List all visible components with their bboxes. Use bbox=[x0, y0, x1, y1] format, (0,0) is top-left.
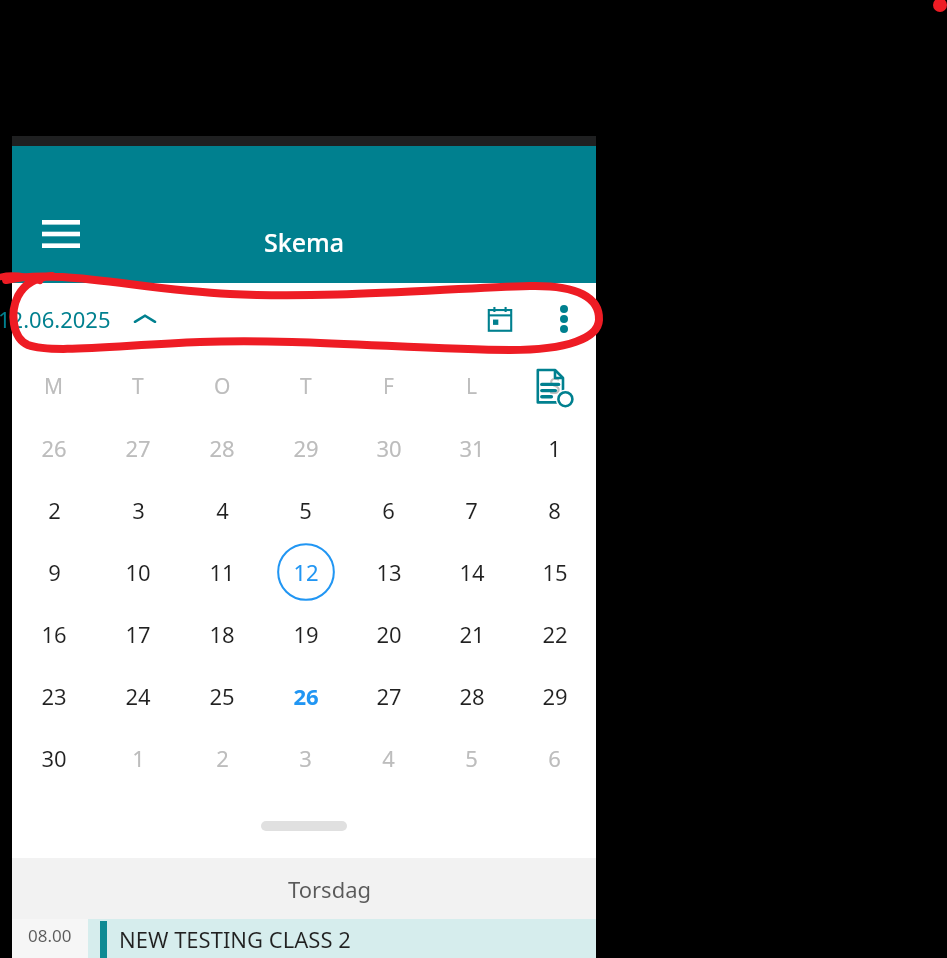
staticText: S bbox=[549, 372, 561, 401]
staticText: 21 bbox=[459, 619, 485, 649]
staticText: 4 bbox=[216, 495, 229, 525]
staticText: 31 bbox=[459, 433, 485, 463]
button[interactable]: 11 bbox=[180, 541, 264, 603]
button[interactable]: 26 bbox=[12, 417, 96, 479]
staticText: 23 bbox=[41, 681, 67, 711]
button[interactable]: 22 bbox=[513, 603, 596, 665]
staticText: 6 bbox=[548, 743, 561, 773]
staticText: 19 bbox=[293, 619, 319, 649]
button[interactable]: 10 bbox=[96, 541, 180, 603]
button[interactable]: 13 bbox=[347, 541, 430, 603]
staticText: 30 bbox=[376, 433, 402, 463]
staticText: 7 bbox=[465, 495, 478, 525]
staticText: 13 bbox=[376, 557, 402, 587]
button[interactable]: 14 bbox=[430, 541, 513, 603]
button[interactable]: 9 bbox=[12, 541, 96, 603]
staticText: 25 bbox=[209, 681, 235, 711]
button[interactable]: 15 bbox=[513, 541, 596, 603]
staticText: T bbox=[132, 372, 144, 401]
button[interactable]: 4 bbox=[180, 479, 264, 541]
staticText: T bbox=[300, 372, 312, 401]
button[interactable]: 26 bbox=[264, 665, 347, 727]
button[interactable]: 5 bbox=[430, 727, 513, 789]
staticText: 12 bbox=[293, 557, 319, 587]
staticText: 5 bbox=[299, 495, 312, 525]
staticText: 29 bbox=[293, 433, 319, 463]
button[interactable]: 18 bbox=[180, 603, 264, 665]
button[interactable]: 7 bbox=[430, 479, 513, 541]
button[interactable]: 4 bbox=[347, 727, 430, 789]
staticText: 5 bbox=[465, 743, 478, 773]
staticText: Skema bbox=[264, 225, 345, 259]
button[interactable]: 28 bbox=[430, 665, 513, 727]
staticText: 08.00 bbox=[28, 924, 72, 947]
staticText: 20 bbox=[376, 619, 402, 649]
button[interactable]: 21 bbox=[430, 603, 513, 665]
button[interactable]: 1 bbox=[513, 417, 596, 479]
button[interactable]: 30 bbox=[12, 727, 96, 789]
button[interactable]: 2 bbox=[12, 479, 96, 541]
button[interactable]: 16 bbox=[12, 603, 96, 665]
button[interactable]: 24 bbox=[96, 665, 180, 727]
staticText: NEW TESTING CLASS 2 bbox=[119, 924, 351, 954]
staticText: 26 bbox=[293, 681, 319, 711]
button[interactable]: 1 bbox=[96, 727, 180, 789]
staticText: Torsdag bbox=[288, 874, 372, 904]
staticText: 22 bbox=[542, 619, 568, 649]
button[interactable]: 23 bbox=[12, 665, 96, 727]
button[interactable]: Pick date bbox=[476, 295, 524, 343]
staticText: 24 bbox=[125, 681, 151, 711]
button[interactable]: 3 bbox=[264, 727, 347, 789]
staticText: 3 bbox=[299, 743, 312, 773]
button[interactable]: 8 bbox=[513, 479, 596, 541]
button[interactable]: Documents, 3 new bbox=[532, 365, 578, 411]
button[interactable]: 27 bbox=[347, 665, 430, 727]
button[interactable]: 27 bbox=[96, 417, 180, 479]
button[interactable]: 20 bbox=[347, 603, 430, 665]
staticText: 28 bbox=[209, 433, 235, 463]
staticText: 16 bbox=[41, 619, 67, 649]
staticText: 1 bbox=[132, 743, 145, 773]
staticText: 27 bbox=[125, 433, 151, 463]
button[interactable]: 12.06.2025 bbox=[0, 296, 159, 342]
button[interactable]: 6 bbox=[347, 479, 430, 541]
staticText: 28 bbox=[459, 681, 485, 711]
staticText: 2 bbox=[216, 743, 229, 773]
staticText: L bbox=[466, 372, 478, 401]
staticText: M bbox=[44, 372, 64, 401]
button[interactable]: 28 bbox=[180, 417, 264, 479]
staticText: 12.06.2025 bbox=[0, 304, 111, 334]
staticText: 17 bbox=[125, 619, 151, 649]
button[interactable]: 29 bbox=[264, 417, 347, 479]
button[interactable]: 31 bbox=[430, 417, 513, 479]
button[interactable]: 25 bbox=[180, 665, 264, 727]
staticText: 8 bbox=[548, 495, 561, 525]
staticText: 9 bbox=[48, 557, 61, 587]
staticText: 3 bbox=[132, 495, 145, 525]
button[interactable]: 2 bbox=[180, 727, 264, 789]
button[interactable]: 6 bbox=[513, 727, 596, 789]
button[interactable]: 3 bbox=[96, 479, 180, 541]
button[interactable]: 5 bbox=[264, 479, 347, 541]
button[interactable]: 30 bbox=[347, 417, 430, 479]
button[interactable]: 29 bbox=[513, 665, 596, 727]
staticText: 4 bbox=[382, 743, 395, 773]
staticText: 6 bbox=[382, 495, 395, 525]
staticText: 14 bbox=[459, 557, 485, 587]
staticText: 10 bbox=[125, 557, 151, 587]
button[interactable] bbox=[12, 789, 596, 858]
button[interactable]: 19 bbox=[264, 603, 347, 665]
button[interactable]: 08.00 bbox=[12, 919, 596, 958]
staticText: O bbox=[214, 372, 231, 401]
button[interactable]: 17 bbox=[96, 603, 180, 665]
staticText: 1 bbox=[548, 433, 561, 463]
staticText: 18 bbox=[209, 619, 235, 649]
staticText: 2 bbox=[48, 495, 61, 525]
staticText: 15 bbox=[542, 557, 568, 587]
staticText: 11 bbox=[209, 557, 235, 587]
button[interactable]: Open navigation menu bbox=[26, 199, 96, 269]
button[interactable]: More options bbox=[540, 295, 588, 343]
staticText: 26 bbox=[41, 433, 67, 463]
staticText: 30 bbox=[41, 743, 67, 773]
button[interactable]: 12 bbox=[264, 541, 347, 603]
